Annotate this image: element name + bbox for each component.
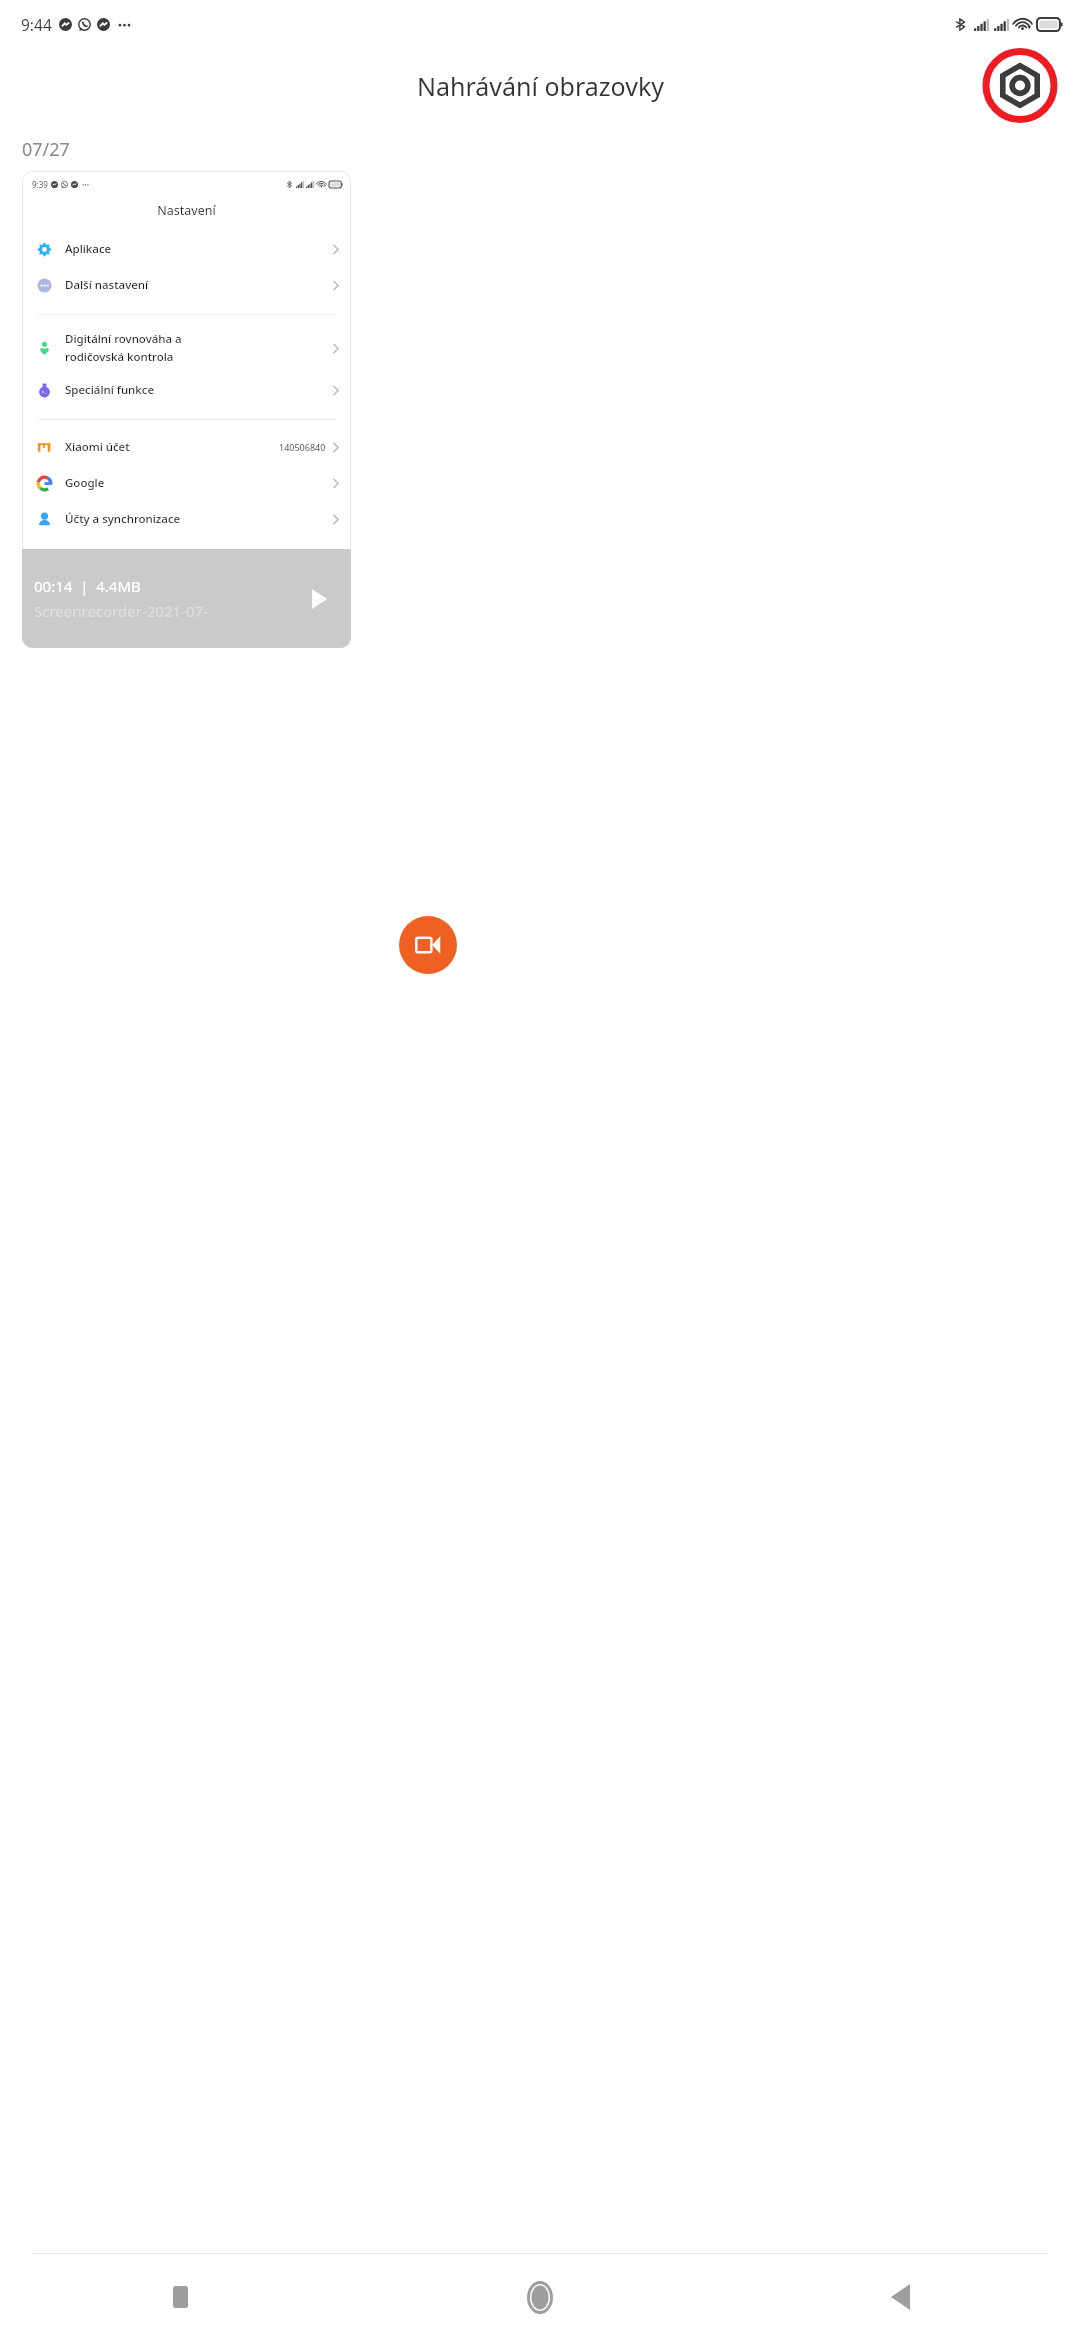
staticText: Poloha: [65, 597, 103, 613]
button[interactable]: Home: [360, 2254, 720, 2340]
staticText: Screenrecorder-2021-07-: [34, 601, 208, 621]
staticText: Nastavení: [22, 202, 351, 219]
staticText: 9:39: [32, 179, 48, 190]
button[interactable]: Další nastavení: [22, 267, 351, 303]
staticText: Google: [65, 475, 105, 491]
staticText: 140506840: [279, 441, 326, 453]
staticText: Účty a synchronizace: [65, 511, 181, 527]
staticText: 9:44: [21, 14, 52, 35]
button[interactable]: Ochrana soukromí: [22, 551, 351, 587]
staticText: Speciální funkce: [65, 382, 154, 398]
button[interactable]: Účty a synchronizace: [22, 501, 351, 537]
button[interactable]: Speciální funkce: [22, 372, 351, 408]
button[interactable]: Settings: [982, 48, 1058, 123]
staticText: Xiaomi účet: [65, 439, 130, 455]
button[interactable]: 9:39: [22, 171, 351, 648]
staticText: Digitální rovnováha a: [65, 331, 182, 347]
staticText: Nahrávání obrazovky: [417, 69, 664, 103]
button[interactable]: Google: [22, 465, 351, 501]
staticText: Aplikace: [65, 241, 112, 257]
button[interactable]: Aplikace: [22, 231, 351, 267]
button[interactable]: Poloha: [22, 587, 351, 623]
staticText: rodičovská kontrola: [65, 349, 174, 365]
button[interactable]: Xiaomi účet: [22, 429, 351, 465]
staticText: 00:14 | 4.4MB: [34, 576, 141, 596]
staticText: 07/27: [22, 137, 70, 162]
button[interactable]: Back: [720, 2254, 1080, 2340]
button[interactable]: Recents: [0, 2254, 360, 2340]
button[interactable]: Digitální rovnováha a: [22, 324, 351, 372]
button[interactable]: Start recording: [399, 916, 457, 974]
staticText: Další nastavení: [65, 277, 149, 293]
